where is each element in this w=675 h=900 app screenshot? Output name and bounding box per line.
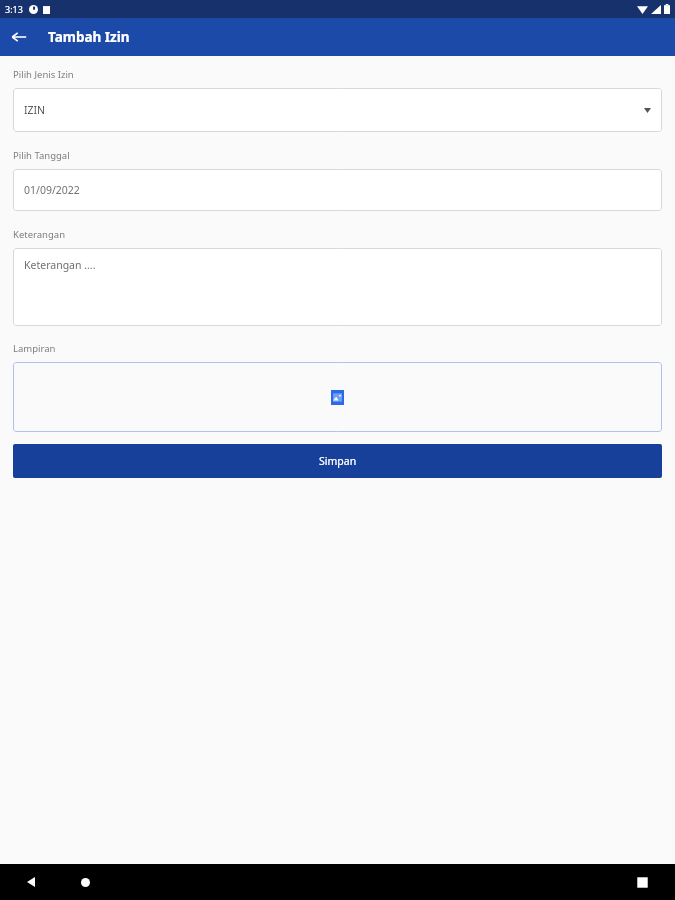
button[interactable]: Recent apps [627, 867, 657, 897]
button[interactable]: IZIN [13, 88, 662, 132]
button[interactable]: 01/09/2022 [13, 169, 662, 211]
button[interactable]: Simpan [13, 444, 662, 478]
staticText: Pilih Jenis Izin [13, 68, 74, 81]
staticText: Lampiran [13, 342, 56, 355]
staticText: Simpan [319, 454, 357, 468]
button[interactable]: Home [70, 867, 100, 897]
staticText: IZIN [24, 103, 46, 117]
button[interactable]: Back [0, 18, 38, 56]
staticText: Pilih Tanggal [13, 149, 70, 162]
staticText: Keterangan [13, 228, 66, 241]
staticText: Keterangan .... [24, 258, 96, 272]
staticText: Tambah Izin [48, 28, 130, 46]
button[interactable]: Back [16, 867, 46, 897]
staticText: 3:13 [5, 3, 23, 15]
staticText: 01/09/2022 [24, 183, 80, 197]
button[interactable]: Keterangan .... [13, 248, 662, 326]
button[interactable]: Upload attachment [13, 362, 662, 432]
